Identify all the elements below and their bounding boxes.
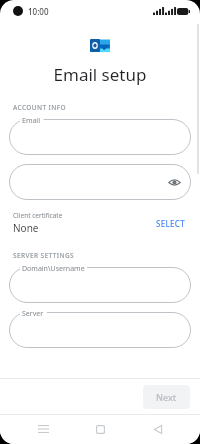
staticText: Email [22,116,40,126]
button[interactable]: Recent apps [28,414,58,444]
staticText: Client certificate [13,211,63,220]
button[interactable]: Show password [9,164,191,200]
button[interactable]: Domain\Username [9,267,191,303]
button[interactable]: Next [143,385,190,409]
button[interactable]: Email [9,119,191,155]
staticText: Domain\Username [22,264,85,274]
button[interactable]: SELECT [154,215,187,232]
staticText: SELECT [156,218,185,229]
staticText: ACCOUNT INFO [13,103,200,112]
button[interactable]: Client certificate [13,209,187,237]
staticText: Email setup [0,63,200,86]
button[interactable]: Server [9,312,191,348]
button[interactable]: Home [85,414,115,444]
staticText: Server [22,309,44,319]
staticText: None [13,221,39,235]
button[interactable]: Back [143,414,173,444]
staticText: SERVER SETTINGS [13,251,200,260]
staticText: Next [156,391,177,403]
staticText: 10:00 [28,6,49,17]
button[interactable]: Show password [167,175,182,190]
